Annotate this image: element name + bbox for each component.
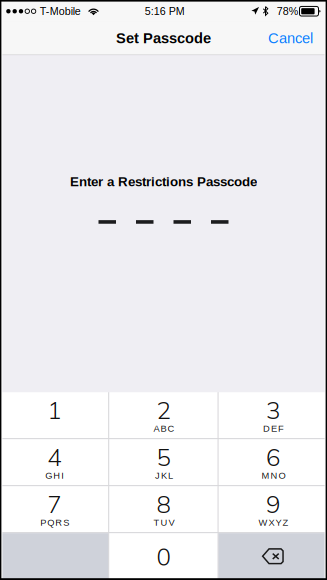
- button[interactable]: 1: [0, 392, 108, 438]
- button[interactable]: 7: [0, 486, 108, 532]
- button[interactable]: 9: [219, 486, 327, 532]
- button[interactable]: 4: [0, 439, 108, 485]
- button[interactable]: 3: [219, 392, 327, 438]
- staticText: Cancel: [268, 30, 313, 46]
- button[interactable]: Blank: [0, 533, 108, 579]
- staticText: 9: [266, 489, 280, 519]
- staticText: 2: [157, 395, 171, 425]
- staticText: 6: [266, 442, 280, 472]
- button[interactable]: 5: [109, 439, 218, 485]
- staticText: 7: [47, 489, 61, 519]
- staticText: 4: [47, 442, 61, 472]
- staticText: T-Mobile: [40, 5, 81, 17]
- button[interactable]: 0: [109, 533, 218, 579]
- staticText: Enter a Restrictions Passcode: [70, 174, 257, 189]
- button[interactable]: Delete: [219, 533, 327, 579]
- staticText: WXYZ: [258, 517, 288, 528]
- staticText: PQRS: [40, 517, 69, 528]
- staticText: 8: [157, 489, 171, 519]
- staticText: ABC: [154, 423, 175, 434]
- button[interactable]: Cancel: [256, 21, 327, 55]
- staticText: 3: [266, 395, 280, 425]
- staticText: 5:16 PM: [145, 5, 185, 17]
- button[interactable]: 6: [219, 439, 327, 485]
- staticText: TUV: [154, 517, 175, 528]
- staticText: MNO: [261, 470, 285, 481]
- staticText: 5: [157, 442, 171, 472]
- staticText: 1: [47, 395, 61, 425]
- staticText: 78%: [277, 5, 298, 17]
- staticText: JKL: [155, 470, 173, 481]
- staticText: DEF: [263, 423, 284, 434]
- staticText: Set Passcode: [116, 30, 211, 46]
- button[interactable]: 2: [109, 392, 218, 438]
- button[interactable]: 8: [109, 486, 218, 532]
- staticText: GHI: [45, 470, 64, 481]
- staticText: 0: [157, 541, 171, 571]
